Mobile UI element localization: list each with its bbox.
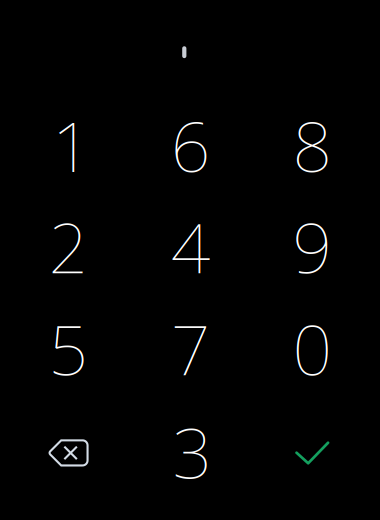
button[interactable]: Confirm: [251, 402, 373, 504]
button[interactable]: 9: [251, 195, 373, 297]
button[interactable]: 2: [8, 195, 130, 297]
staticText: 5: [49, 302, 89, 394]
staticText: 0: [292, 302, 332, 394]
staticText: 3: [172, 405, 212, 498]
staticText: 9: [292, 200, 332, 292]
staticText: 4: [171, 200, 211, 292]
button[interactable]: 5: [8, 297, 130, 399]
button[interactable]: 8: [251, 94, 373, 196]
staticText: 6: [171, 99, 211, 191]
button[interactable]: 3: [131, 400, 253, 502]
button[interactable]: 7: [130, 297, 252, 399]
staticText: 7: [171, 302, 211, 394]
button[interactable]: Delete: [7, 402, 129, 504]
staticText: 2: [49, 200, 89, 292]
staticText: 1: [52, 99, 92, 191]
button[interactable]: 0: [251, 297, 373, 399]
button[interactable]: 4: [130, 195, 252, 297]
staticText: 8: [292, 99, 332, 191]
button[interactable]: 6: [130, 94, 252, 196]
button[interactable]: 1: [11, 94, 133, 196]
